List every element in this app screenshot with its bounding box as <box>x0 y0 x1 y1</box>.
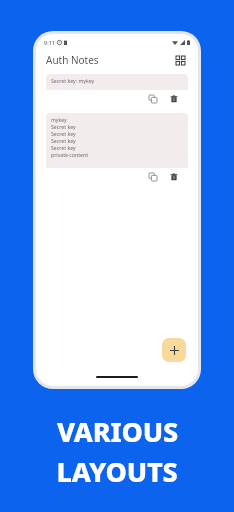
staticText: 9:11 <box>44 39 55 46</box>
staticText: Secret key <box>51 137 76 144</box>
staticText: mykey <box>51 116 67 123</box>
staticText: VARIOUS <box>57 413 178 450</box>
button[interactable]: mykey <box>46 113 188 186</box>
button[interactable]: Copy <box>146 170 160 184</box>
staticText: private content <box>51 151 89 158</box>
button[interactable]: Toggle layout <box>172 52 188 68</box>
button[interactable]: Delete <box>167 170 181 184</box>
staticText: Auth Notes <box>46 53 99 67</box>
staticText: Secret key <box>51 130 76 137</box>
button[interactable]: Add note <box>162 338 186 362</box>
button[interactable]: Copy <box>146 92 160 106</box>
staticText: LAYOUTS <box>56 453 178 490</box>
button[interactable]: Delete <box>167 92 181 106</box>
staticText: Secret key <box>51 123 76 130</box>
staticText: Secret key <box>51 144 76 151</box>
button[interactable]: Secret key: mykey <box>46 74 188 108</box>
staticText: Secret key: mykey <box>51 77 95 84</box>
